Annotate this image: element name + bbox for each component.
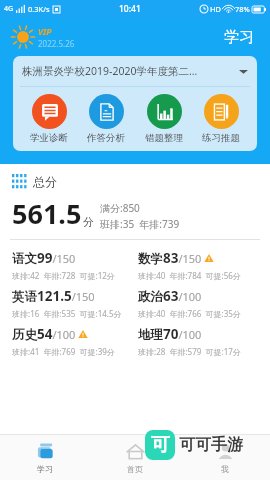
button[interactable]: 错题整理	[143, 94, 185, 144]
staticText: 分	[83, 215, 94, 229]
staticText: 数学83/150	[138, 249, 202, 267]
button[interactable]: 株洲景炎学校2019-2020学年度第二…	[13, 56, 257, 86]
button[interactable]: 学业诊断	[28, 94, 70, 144]
staticText: 0.3K/s	[28, 4, 50, 14]
button[interactable]: 练习推题	[200, 94, 242, 144]
staticText: 可	[151, 433, 170, 457]
staticText: 班排:40 年排:766 可提:35分	[138, 308, 241, 319]
button[interactable]: VIP badge	[12, 26, 34, 48]
staticText: 4G	[4, 4, 14, 14]
staticText: 政治63/100	[138, 287, 202, 305]
staticText: 学习	[224, 28, 254, 47]
staticText: 学业诊断	[30, 132, 68, 144]
staticText: 满分:850	[100, 201, 140, 215]
button[interactable]: 首页	[90, 435, 180, 480]
button[interactable]: 作答分析	[85, 94, 127, 144]
button[interactable]: 语文99/150	[12, 246, 132, 284]
staticText: 错题整理	[145, 132, 183, 144]
staticText: 我	[221, 464, 229, 474]
staticText: 班排:16 年排:535 可提:14.5分	[12, 308, 122, 319]
button[interactable]: 学习	[0, 435, 90, 480]
staticText: 地理70/100	[138, 325, 202, 343]
staticText: VIP	[38, 26, 52, 38]
button[interactable]: 学习	[220, 26, 258, 49]
staticText: 班排:42 年排:728 可提:12分	[12, 270, 115, 281]
staticText: 株洲景炎学校2019-2020学年度第二…	[22, 64, 198, 78]
staticText: 561.5	[12, 195, 82, 232]
staticText: 学习	[37, 464, 53, 474]
staticText: 英语121.5/150	[12, 287, 95, 305]
button[interactable]: 政治63/100	[138, 284, 258, 322]
staticText: 可可手游	[179, 435, 243, 455]
staticText: 78%	[235, 4, 250, 14]
staticText: 历史54/100	[12, 325, 76, 343]
staticText: 班排:28 年排:579 可提:17分	[138, 346, 241, 357]
staticText: 班排:40 年排:784 可提:56分	[138, 270, 241, 281]
button[interactable]: 数学83/150	[138, 246, 258, 284]
staticText: 10:41	[119, 3, 141, 15]
button[interactable]: 我	[180, 435, 270, 480]
staticText: 2022.5.26	[38, 38, 75, 49]
staticText: 班排:41 年排:769 可提:39分	[12, 346, 115, 357]
staticText: HD	[210, 4, 222, 14]
staticText: 总分	[33, 174, 57, 189]
staticText: 首页	[127, 464, 143, 474]
button[interactable]: 英语121.5/150	[12, 284, 132, 322]
staticText: 班排:35 年排:739	[100, 217, 180, 231]
staticText: 作答分析	[87, 132, 125, 144]
button[interactable]: 地理70/100	[138, 322, 258, 360]
button[interactable]: 历史54/100	[12, 322, 132, 360]
staticText: 语文99/150	[12, 249, 76, 267]
staticText: 练习推题	[202, 132, 240, 144]
